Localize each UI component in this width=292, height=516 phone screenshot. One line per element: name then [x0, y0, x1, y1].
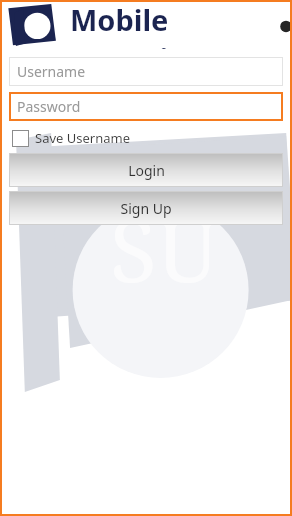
staticText: Save Username	[35, 129, 130, 147]
staticText: Mobile Deposit	[70, 0, 286, 49]
button[interactable]: Sign Up	[9, 191, 283, 225]
button[interactable]: Username	[9, 57, 283, 86]
staticText: SU	[110, 190, 219, 307]
button[interactable]: Save Username	[12, 129, 130, 147]
button[interactable]: Login	[9, 153, 283, 187]
staticText: Username	[17, 62, 86, 81]
button[interactable]: Password	[9, 92, 283, 121]
staticText: Login	[128, 161, 165, 180]
staticText: Password	[17, 97, 81, 116]
staticText: Sign Up	[120, 199, 172, 218]
